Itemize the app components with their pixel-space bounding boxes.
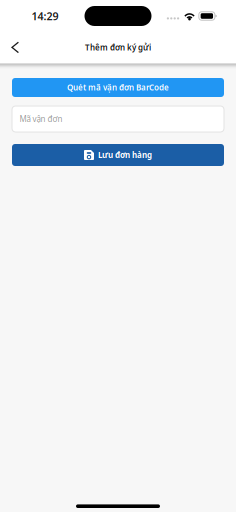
staticText: Lưu đơn hàng — [98, 150, 152, 160]
staticText: Thêm đơn ký gửi — [85, 42, 151, 53]
staticText: 14:29 — [31, 9, 58, 23]
button[interactable]: Lưu đơn hàng — [12, 144, 224, 166]
button[interactable]: Quét mã vận đơn BarCode — [12, 78, 224, 97]
staticText: Quét mã vận đơn BarCode — [67, 82, 169, 93]
button[interactable]: Back — [0, 33, 29, 61]
staticText: Mã vận đơn — [19, 114, 62, 124]
